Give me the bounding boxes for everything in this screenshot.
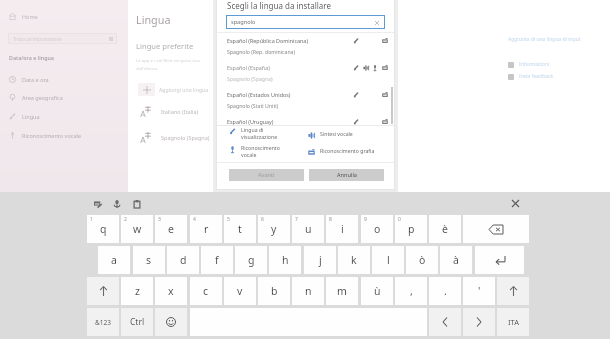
staticText: g	[248, 253, 255, 267]
button[interactable]: ITA	[497, 308, 529, 336]
button[interactable]: a	[98, 246, 130, 274]
button[interactable]: .	[429, 277, 461, 305]
staticText: y	[271, 222, 277, 236]
button[interactable]: Handwriting panel	[92, 198, 103, 209]
staticText: s	[146, 253, 152, 267]
button[interactable]	[155, 308, 187, 336]
button[interactable]: m	[326, 277, 358, 305]
button[interactable]: Ctrl	[121, 308, 153, 336]
button[interactable]: Español (Estados Unidos)	[216, 89, 395, 115]
staticText: x	[168, 284, 174, 298]
staticText: Español (Estados Unidos)	[227, 91, 291, 98]
staticText: Spagnolo (Spagna)	[161, 134, 210, 141]
button[interactable]: '	[463, 277, 495, 305]
button[interactable]: g	[235, 246, 267, 274]
staticText: Trova un'impostazione	[13, 36, 62, 42]
staticText: Spagnolo (Rep. dominicana)	[227, 48, 296, 55]
staticText: Invia feedback	[519, 73, 554, 80]
button[interactable]: Español (Uruguay)	[216, 116, 395, 142]
button[interactable]: Area geografica	[9, 94, 63, 101]
button[interactable]: Trova un'impostazione	[8, 33, 117, 44]
button[interactable]: 8	[326, 215, 358, 243]
button[interactable]: h	[269, 246, 301, 274]
button[interactable]: l	[372, 246, 404, 274]
button[interactable]: k	[338, 246, 370, 274]
button[interactable]: ,	[395, 277, 427, 305]
button[interactable]: 2	[121, 215, 153, 243]
button[interactable]: 5	[224, 215, 256, 243]
staticText: Aggiunta di una lingua di input	[508, 36, 581, 43]
button[interactable]: Avanti	[229, 169, 304, 181]
staticText: spagnolo	[231, 18, 256, 26]
button[interactable]: à	[440, 246, 472, 274]
button[interactable]: s	[133, 246, 165, 274]
button[interactable]	[497, 277, 529, 305]
staticText: b	[271, 284, 278, 298]
staticText: ù	[374, 284, 381, 298]
button[interactable]: Close keyboard	[508, 196, 522, 210]
button[interactable]: Clipboard	[131, 198, 142, 209]
button[interactable]: 0	[395, 215, 427, 243]
staticText: 0	[398, 216, 401, 223]
button[interactable]: spagnolo	[226, 15, 385, 29]
staticText: f	[215, 253, 219, 267]
button[interactable]: Italiano (Italia)	[138, 104, 199, 118]
staticText: 8	[329, 216, 332, 223]
button[interactable]: ò	[406, 246, 438, 274]
button[interactable]	[87, 277, 119, 305]
button[interactable]: ù	[361, 277, 393, 305]
staticText: 2	[124, 216, 127, 223]
button[interactable]: Sintesi vocale	[308, 130, 353, 137]
button[interactable]: 4	[190, 215, 222, 243]
staticText: z	[135, 284, 140, 298]
button[interactable]: x	[155, 277, 187, 305]
button[interactable]: 7	[292, 215, 324, 243]
button[interactable]: n	[292, 277, 324, 305]
staticText: Italiano (Italia)	[161, 108, 199, 115]
button[interactable]: Riconoscimento vocale	[9, 132, 81, 139]
button[interactable]: 3	[155, 215, 187, 243]
staticText: Riconoscimento grafia	[320, 147, 375, 154]
button[interactable]: Lingua di visualizzazione	[229, 126, 278, 141]
button[interactable]: 9	[361, 215, 393, 243]
staticText: k	[351, 253, 357, 267]
button[interactable]: Español (República Dominicana)	[216, 35, 395, 61]
staticText: i	[341, 222, 344, 236]
button[interactable]	[463, 215, 529, 243]
button[interactable]: f	[201, 246, 233, 274]
button[interactable]: Spagnolo (Spagna)	[138, 130, 210, 144]
button[interactable]: c	[190, 277, 222, 305]
button[interactable]: Invia feedback	[508, 73, 554, 80]
staticText: à	[453, 253, 459, 267]
button[interactable]: Lingua	[9, 113, 40, 120]
button[interactable]: Aggiungi una lingua	[138, 83, 209, 96]
staticText: h	[282, 253, 289, 267]
button[interactable]: Home	[9, 13, 38, 20]
button[interactable]	[463, 308, 495, 336]
button[interactable]: Annulla	[309, 169, 384, 181]
staticText: Annulla	[337, 171, 357, 179]
staticText: Español (Uruguay)	[227, 118, 274, 125]
staticText: è	[442, 222, 448, 236]
button[interactable]: Español (España)	[216, 62, 395, 88]
button[interactable]	[475, 246, 524, 274]
button[interactable]: d	[167, 246, 199, 274]
button[interactable]: è	[429, 215, 461, 243]
button[interactable]: z	[121, 277, 153, 305]
button[interactable]: Data e ora	[9, 76, 49, 83]
button[interactable]: Informazioni	[508, 61, 550, 68]
button[interactable]: 6	[258, 215, 290, 243]
button[interactable]	[429, 308, 461, 336]
button[interactable]: Microphone	[111, 198, 122, 209]
button[interactable]: Riconoscimento vocale	[229, 144, 280, 159]
button[interactable]: &123	[87, 308, 119, 336]
staticText: Avanti	[258, 171, 275, 179]
button[interactable]: 1	[87, 215, 119, 243]
button[interactable]: Riconoscimento grafia	[308, 147, 375, 154]
button[interactable]: b	[258, 277, 290, 305]
staticText: Lingua di visualizzazione	[241, 126, 278, 141]
button[interactable]: j	[304, 246, 336, 274]
staticText: Home	[22, 13, 38, 20]
button[interactable]: v	[224, 277, 256, 305]
